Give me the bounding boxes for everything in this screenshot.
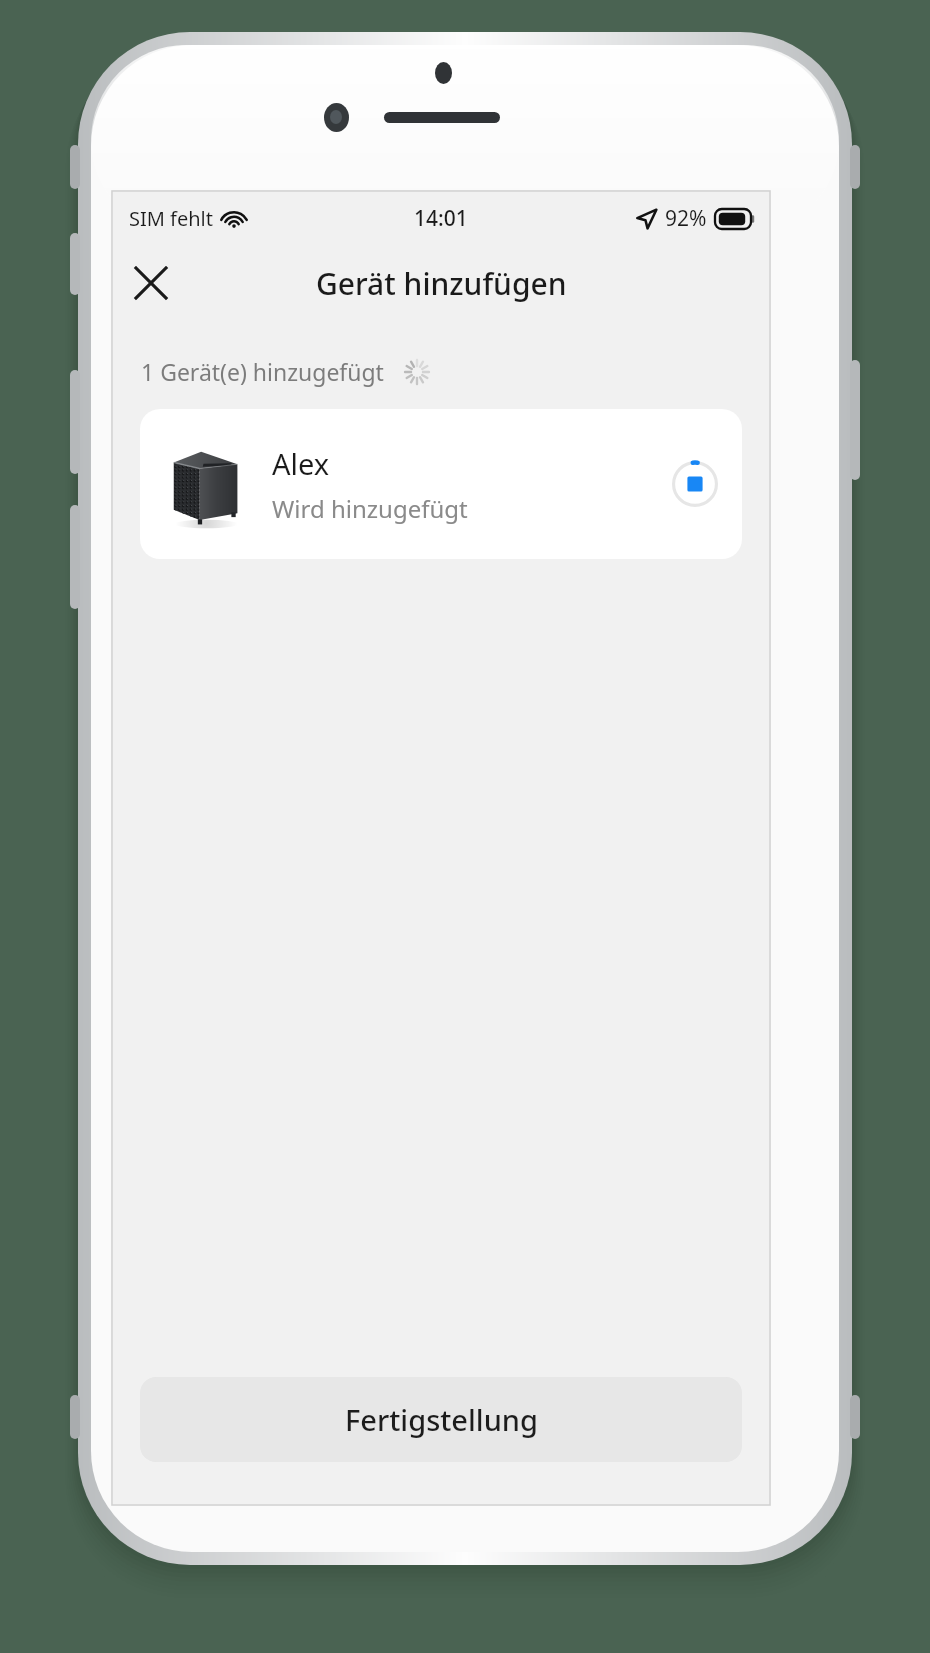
staticText: Gerät hinzufügen xyxy=(316,263,567,304)
staticText: SIM fehlt xyxy=(129,205,213,232)
button[interactable]: Schließen xyxy=(123,255,179,311)
staticText: Fertigstellung xyxy=(345,1400,538,1439)
staticText: Alex xyxy=(272,444,330,483)
button[interactable]: Alex xyxy=(140,409,742,559)
staticText: 92% xyxy=(665,204,707,233)
staticText: 1 Gerät(e) hinzugefügt xyxy=(141,356,384,387)
staticText: Wird hinzugefügt xyxy=(272,492,468,525)
staticText: 14:01 xyxy=(414,204,468,233)
button[interactable]: Fertigstellung xyxy=(140,1377,742,1462)
button[interactable]: Hinzufügen abbrechen xyxy=(672,461,718,507)
